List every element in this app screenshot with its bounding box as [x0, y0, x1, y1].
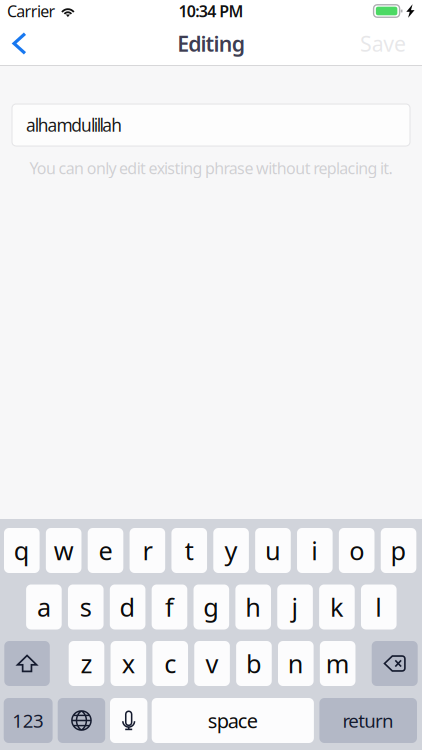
- button[interactable]: w: [46, 528, 81, 573]
- button[interactable]: Dictation: [110, 698, 147, 743]
- button[interactable]: n: [278, 641, 314, 686]
- staticText: space: [208, 707, 258, 734]
- staticText: q: [14, 534, 30, 567]
- staticText: w: [54, 534, 74, 567]
- button[interactable]: h: [235, 584, 271, 629]
- button[interactable]: b: [236, 641, 272, 686]
- staticText: x: [122, 647, 135, 680]
- button[interactable]: Shift: [4, 641, 50, 686]
- staticText: Editing: [177, 29, 245, 58]
- staticText: n: [288, 647, 304, 680]
- staticText: Save: [360, 29, 406, 58]
- staticText: y: [225, 534, 238, 567]
- button[interactable]: t: [171, 528, 207, 573]
- staticText: f: [165, 590, 174, 624]
- button[interactable]: y: [213, 528, 249, 573]
- button[interactable]: q: [4, 528, 40, 573]
- button[interactable]: Back: [0, 22, 39, 65]
- staticText: g: [203, 590, 219, 624]
- button[interactable]: o: [339, 528, 374, 573]
- staticText: k: [330, 590, 344, 624]
- button[interactable]: d: [110, 584, 145, 629]
- staticText: m: [326, 647, 350, 680]
- staticText: 10:34 PM: [178, 0, 244, 22]
- button[interactable]: Save: [344, 22, 422, 65]
- staticText: p: [390, 534, 406, 567]
- button[interactable]: k: [319, 584, 355, 629]
- button[interactable]: l: [361, 584, 397, 629]
- staticText: d: [120, 590, 136, 624]
- staticText: c: [164, 647, 176, 680]
- button[interactable]: m: [320, 641, 355, 686]
- staticText: h: [245, 590, 261, 624]
- staticText: u: [265, 534, 281, 567]
- staticText: You can only edit existing phrase withou…: [29, 157, 392, 179]
- staticText: alhamdulillah: [26, 113, 122, 136]
- staticText: a: [37, 590, 51, 624]
- button[interactable]: a: [26, 584, 62, 629]
- button[interactable]: space: [152, 698, 314, 743]
- button[interactable]: Numbers: [4, 698, 53, 743]
- button[interactable]: c: [152, 641, 188, 686]
- button[interactable]: s: [68, 584, 104, 629]
- staticText: z: [80, 647, 92, 680]
- staticText: return: [342, 708, 394, 733]
- button[interactable]: i: [297, 528, 333, 573]
- staticText: s: [80, 590, 92, 624]
- staticText: j: [292, 590, 299, 624]
- staticText: v: [206, 647, 219, 680]
- button[interactable]: j: [277, 584, 313, 629]
- staticText: r: [142, 534, 152, 567]
- staticText: Carrier: [7, 0, 55, 22]
- staticText: l: [375, 590, 382, 624]
- button[interactable]: return: [319, 698, 417, 743]
- staticText: 123: [12, 708, 44, 733]
- staticText: o: [349, 534, 364, 567]
- button[interactable]: Next keyboard: [58, 698, 105, 743]
- staticText: e: [98, 534, 112, 567]
- button[interactable]: u: [255, 528, 291, 573]
- button[interactable]: Delete: [372, 641, 418, 686]
- button[interactable]: x: [111, 641, 146, 686]
- staticText: i: [311, 534, 318, 567]
- button[interactable]: g: [193, 584, 229, 629]
- button[interactable]: f: [152, 584, 187, 629]
- button[interactable]: v: [194, 641, 230, 686]
- button[interactable]: p: [381, 528, 416, 573]
- staticText: b: [246, 647, 262, 680]
- staticText: t: [185, 534, 194, 567]
- button[interactable]: r: [130, 528, 165, 573]
- button[interactable]: e: [88, 528, 123, 573]
- button[interactable]: z: [69, 641, 104, 686]
